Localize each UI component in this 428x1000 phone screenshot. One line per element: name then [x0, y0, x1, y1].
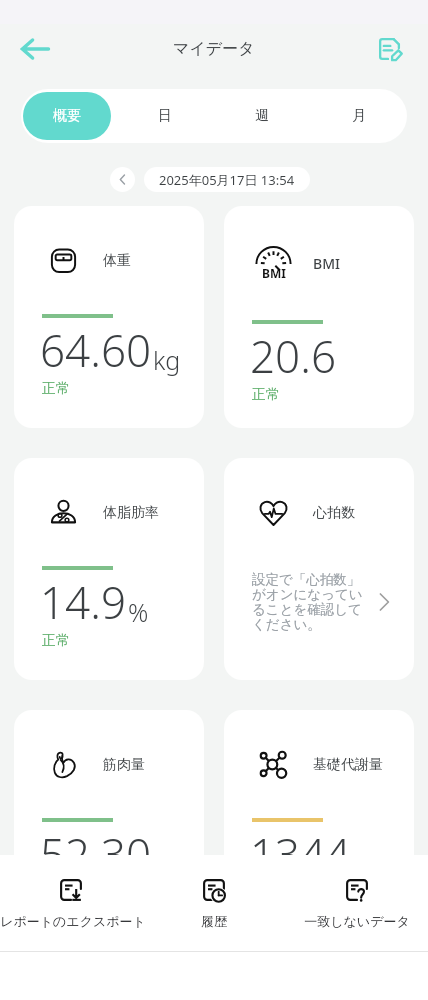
staticText: 14.9: [40, 572, 127, 632]
button[interactable]: 筋肉量: [14, 710, 204, 932]
staticText: 概要: [53, 107, 81, 125]
button[interactable]: 体重: [14, 206, 204, 428]
staticText: 20.6: [250, 326, 337, 386]
staticText: 設定で「心拍数」がオンになっていることを確認してください。: [252, 571, 366, 633]
staticText: 正常: [42, 632, 70, 650]
button[interactable]: 戻る: [11, 25, 59, 73]
staticText: 週: [255, 107, 269, 125]
staticText: レポートのエクスポート: [0, 913, 142, 929]
button[interactable]: 体脂肪率: [14, 458, 204, 680]
button[interactable]: 履歴: [142, 855, 285, 951]
staticText: マイデータ: [173, 39, 255, 59]
staticText: 心拍数: [313, 504, 355, 522]
button[interactable]: レポートのエクスポート: [0, 855, 142, 951]
button[interactable]: 2025年05月17日 13:54: [144, 167, 310, 192]
button[interactable]: 月: [310, 92, 407, 140]
staticText: 52.30: [40, 824, 152, 884]
staticText: BMI: [313, 254, 340, 273]
staticText: 正常: [42, 884, 70, 902]
staticText: 正常: [42, 380, 70, 398]
staticText: 一致しないデータ: [304, 913, 410, 929]
staticText: 2025年05月17日 13:54: [159, 171, 295, 189]
button[interactable]: 前の日: [110, 167, 135, 192]
staticText: BMI: [262, 265, 286, 281]
button[interactable]: 基礎代謝量: [224, 710, 414, 932]
button[interactable]: 日: [117, 92, 213, 140]
staticText: 筋肉量: [103, 756, 145, 774]
button[interactable]: 概要: [23, 92, 111, 140]
staticText: kcal: [352, 847, 396, 881]
staticText: %: [128, 595, 149, 629]
button[interactable]: BMI: [224, 206, 414, 428]
button[interactable]: 心拍数: [224, 458, 414, 680]
staticText: 月: [352, 107, 366, 125]
staticText: 1344: [250, 824, 351, 884]
staticText: 正常: [252, 386, 280, 404]
button[interactable]: 週: [213, 92, 310, 140]
staticText: kg: [153, 343, 181, 377]
staticText: 基礎代謝量: [313, 756, 383, 774]
button[interactable]: 一致しないデータ: [285, 855, 428, 951]
staticText: 64.60: [40, 320, 152, 380]
staticText: 体重: [103, 252, 131, 270]
staticText: 履歴: [201, 913, 227, 929]
staticText: 体脂肪率: [103, 504, 159, 522]
staticText: 日: [158, 107, 172, 125]
button[interactable]: 編集: [365, 25, 413, 73]
